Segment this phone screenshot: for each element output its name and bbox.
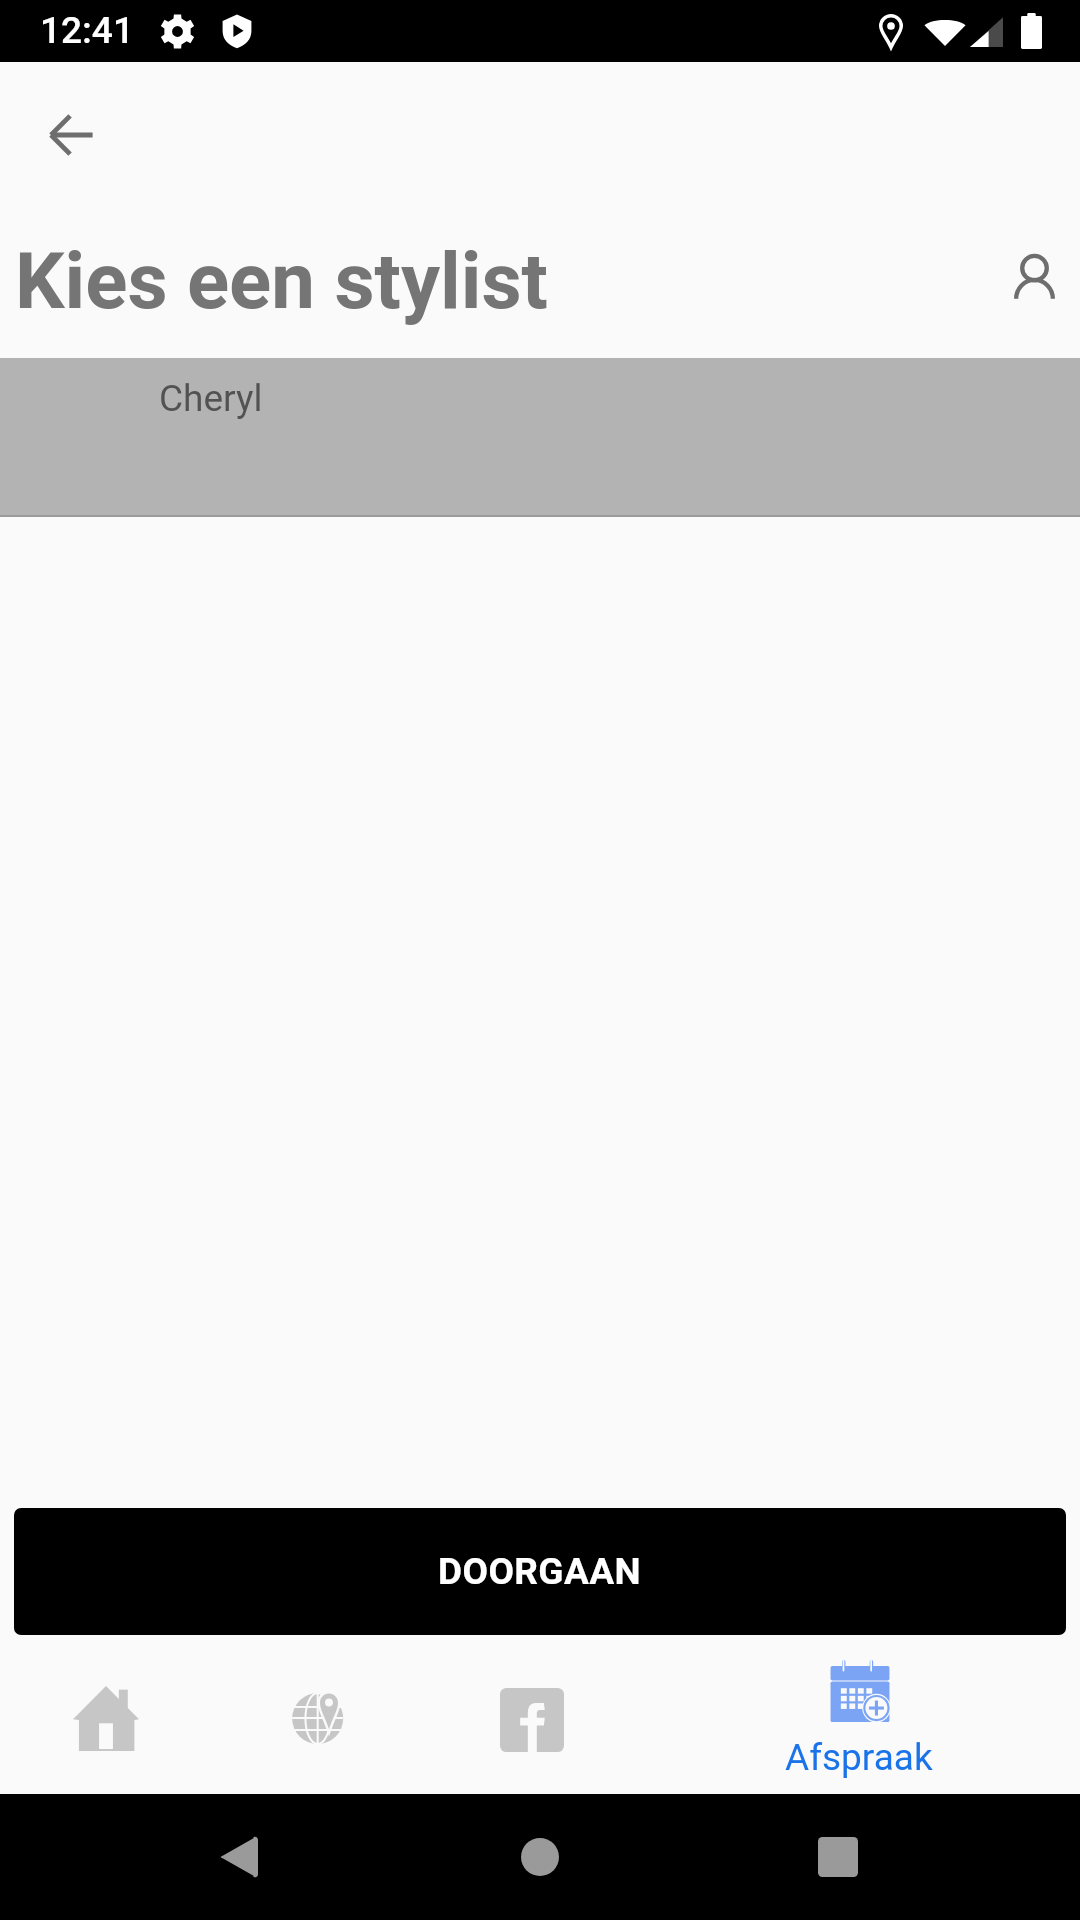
button[interactable]: Back (35, 99, 107, 171)
button[interactable]: Home (51, 1664, 161, 1774)
button[interactable]: Account (998, 241, 1070, 313)
button[interactable]: Home (485, 1815, 595, 1899)
staticText: Cheryl (159, 377, 263, 420)
button[interactable]: Locations (269, 1664, 371, 1766)
button[interactable]: DOORGAAN (14, 1508, 1066, 1635)
staticText: Kies een stylist (15, 236, 548, 327)
button[interactable]: Cheryl (0, 358, 1080, 517)
button[interactable]: Facebook (478, 1666, 586, 1774)
button[interactable]: Recent apps (783, 1815, 893, 1899)
staticText: 12:41 (40, 9, 134, 52)
staticText: DOORGAAN (438, 1550, 642, 1593)
button[interactable]: Back (184, 1815, 294, 1899)
staticText: Afspraak (785, 1736, 933, 1779)
button[interactable]: Afspraak (766, 1647, 952, 1787)
